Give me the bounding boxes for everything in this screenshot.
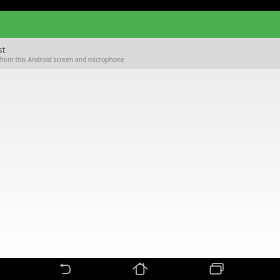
button[interactable]: Back [27, 258, 102, 280]
button[interactable]: Recent apps [177, 258, 252, 280]
button[interactable]: st [0, 38, 280, 69]
staticText: st [0, 43, 6, 55]
staticText: from this Android screen and microphone [0, 55, 125, 64]
button[interactable]: Home [102, 258, 177, 280]
